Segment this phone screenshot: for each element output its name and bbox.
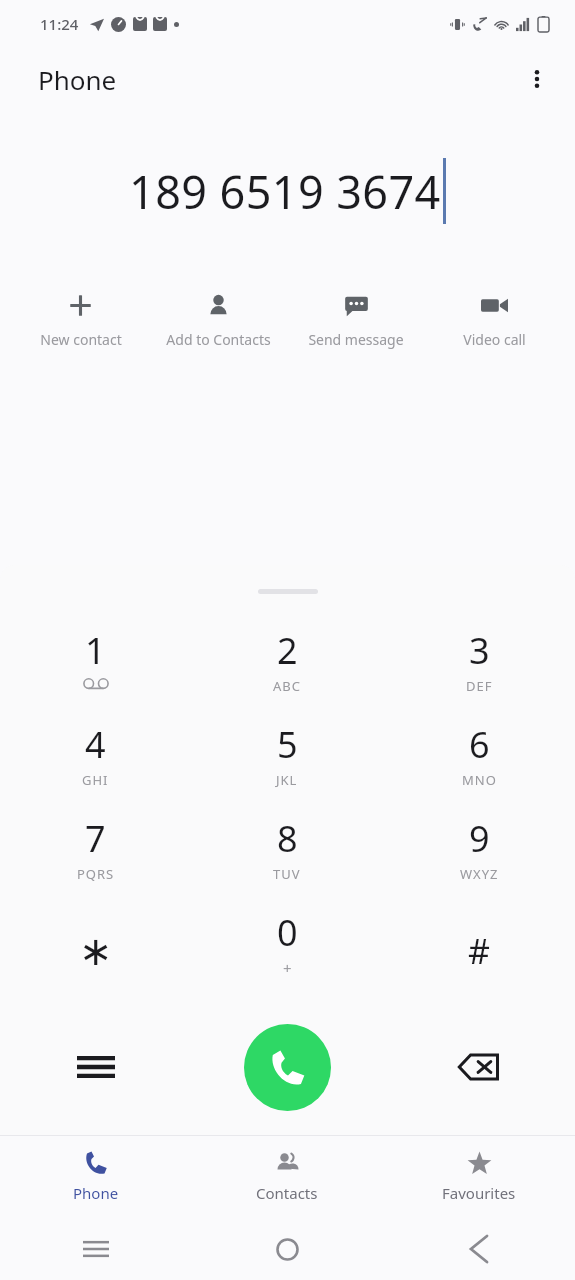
staticText: Phone [38, 62, 117, 97]
button[interactable]: 1 [0, 622, 191, 716]
button[interactable]: 5 [191, 716, 383, 810]
staticText: # [468, 928, 490, 974]
button[interactable]: Back [383, 1218, 575, 1280]
staticText: Phone [73, 1183, 119, 1203]
button[interactable]: 7 [0, 810, 191, 904]
staticText: Add to Contacts [166, 330, 271, 349]
button[interactable]: 2 [191, 622, 383, 716]
staticText: PQRS [77, 865, 115, 883]
button[interactable]: Send message [287, 286, 425, 355]
button[interactable]: Recents [0, 1218, 191, 1280]
staticText: 0 [277, 908, 298, 957]
button[interactable]: Keypad options [0, 1012, 191, 1122]
button[interactable]: 9 [383, 810, 575, 904]
button[interactable]: New contact [12, 286, 149, 355]
staticText: TUV [273, 865, 301, 883]
staticText: 6 [469, 720, 490, 769]
button[interactable]: Call [244, 1024, 331, 1111]
button[interactable]: Star [0, 904, 191, 998]
button[interactable]: 3 [383, 622, 575, 716]
staticText: Contacts [256, 1183, 318, 1203]
staticText: ABC [273, 677, 301, 695]
staticText: 7 [85, 814, 106, 863]
button[interactable]: Home [191, 1218, 383, 1280]
button[interactable]: Video call [425, 286, 563, 355]
staticText: ∗ [79, 928, 113, 975]
button[interactable]: Phone [0, 1136, 191, 1218]
staticText: 5 [277, 720, 298, 769]
button[interactable]: More options [513, 55, 561, 103]
staticText: Favourites [442, 1183, 516, 1203]
staticText: 189 6519 3674 [129, 161, 441, 222]
button[interactable]: 0 [191, 904, 383, 998]
staticText: Video call [463, 330, 526, 349]
staticText: 8 [277, 814, 298, 863]
staticText: DEF [466, 677, 493, 695]
staticText: JKL [276, 771, 298, 789]
button[interactable]: Pound [383, 904, 575, 998]
staticText: 4 [85, 720, 106, 769]
button[interactable]: Add to Contacts [149, 286, 287, 355]
staticText: 1 [85, 626, 106, 675]
staticText: WXYZ [460, 865, 499, 883]
staticText: GHI [82, 771, 109, 789]
button[interactable]: Contacts [191, 1136, 383, 1218]
button[interactable]: Favourites [383, 1136, 575, 1218]
staticText: 3 [469, 626, 490, 675]
staticText: 9 [469, 814, 490, 863]
staticText: Send message [308, 330, 404, 349]
staticText: New contact [40, 330, 122, 349]
button[interactable]: 4 [0, 716, 191, 810]
button[interactable]: 8 [191, 810, 383, 904]
staticText: 2 [277, 626, 298, 675]
staticText: + [283, 958, 292, 978]
button[interactable]: Backspace [383, 1012, 575, 1122]
button[interactable]: 6 [383, 716, 575, 810]
staticText: 11:24 [40, 14, 79, 34]
staticText: MNO [462, 771, 497, 789]
